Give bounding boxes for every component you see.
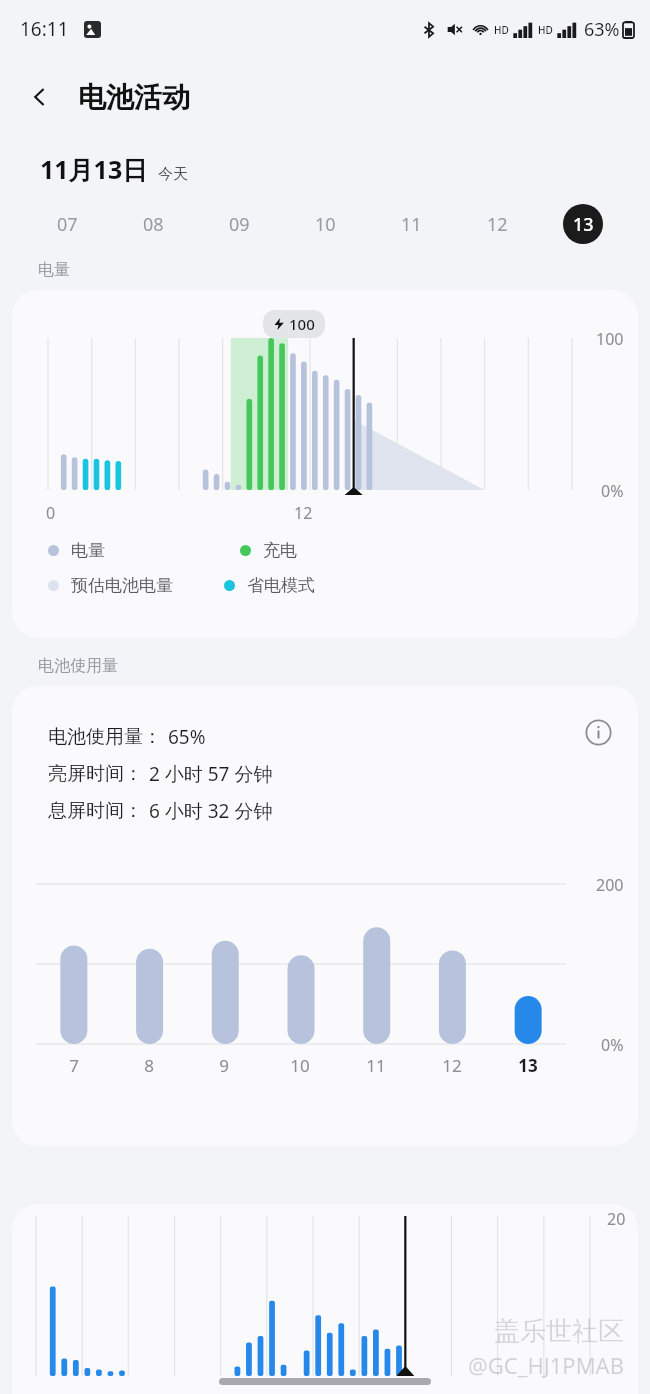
staticText: 12 bbox=[294, 502, 313, 524]
staticText: 200 bbox=[596, 874, 624, 896]
staticText: 12 bbox=[442, 1054, 462, 1077]
staticText: @GC_HJ1PMAB bbox=[468, 1350, 624, 1380]
button[interactable]: 07 bbox=[24, 202, 110, 246]
staticText: 09 bbox=[229, 212, 250, 237]
staticText: 7 bbox=[69, 1054, 79, 1077]
button[interactable]: 返回 bbox=[18, 75, 62, 119]
staticText: 10 bbox=[290, 1054, 310, 1077]
staticText: 13 bbox=[573, 212, 594, 237]
staticText: 亮屏时间： bbox=[48, 762, 143, 786]
button[interactable]: 10 bbox=[282, 202, 368, 246]
staticText: 100 bbox=[289, 314, 315, 334]
button[interactable]: 12 bbox=[454, 202, 540, 246]
staticText: 13 bbox=[518, 1054, 538, 1077]
staticText: 充电 bbox=[263, 540, 297, 561]
staticText: 省电模式 bbox=[247, 575, 315, 596]
staticText: 12 bbox=[487, 212, 508, 237]
staticText: 20 bbox=[607, 1208, 626, 1230]
staticText: 0 bbox=[46, 502, 56, 524]
staticText: 电量 bbox=[38, 260, 70, 280]
staticText: 0% bbox=[601, 480, 624, 502]
staticText: 电池使用量： bbox=[48, 725, 162, 749]
button[interactable]: 11 bbox=[368, 202, 454, 246]
staticText: 65% bbox=[168, 724, 206, 750]
staticText: 63% bbox=[584, 17, 620, 42]
staticText: 2 小时 57 分钟 bbox=[149, 761, 273, 787]
staticText: 16:11 bbox=[20, 16, 69, 42]
staticText: 电池活动 bbox=[78, 80, 190, 115]
button[interactable]: 100 bbox=[12, 290, 638, 638]
button[interactable]: 13 bbox=[540, 202, 626, 246]
staticText: 10 bbox=[315, 212, 336, 237]
staticText: HD bbox=[538, 23, 553, 37]
button[interactable]: 08 bbox=[110, 202, 196, 246]
staticText: 9 bbox=[219, 1054, 229, 1077]
button[interactable]: 09 bbox=[196, 202, 282, 246]
staticText: 电池使用量 bbox=[38, 656, 118, 676]
staticText: 11 bbox=[366, 1054, 386, 1077]
staticText: 盖乐世社区 bbox=[494, 1315, 624, 1348]
staticText: 电量 bbox=[71, 540, 105, 561]
staticText: 8 bbox=[144, 1054, 154, 1077]
staticText: 6 小时 32 分钟 bbox=[149, 798, 273, 824]
staticText: 0% bbox=[601, 1034, 624, 1056]
button[interactable]: 信息 bbox=[578, 712, 618, 752]
staticText: 11 bbox=[401, 212, 422, 237]
staticText: 08 bbox=[143, 212, 164, 237]
staticText: 预估电池电量 bbox=[71, 575, 173, 596]
staticText: 07 bbox=[57, 212, 78, 237]
staticText: 今天 bbox=[158, 165, 188, 184]
staticText: 11月13日 bbox=[40, 152, 148, 186]
staticText: HD bbox=[494, 23, 509, 37]
staticText: 息屏时间： bbox=[48, 799, 143, 823]
staticText: 100 bbox=[596, 328, 624, 350]
